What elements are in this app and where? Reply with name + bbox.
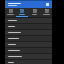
button[interactable]: Tab xyxy=(40,8,52,17)
button[interactable] xyxy=(5,18,52,23)
button[interactable] xyxy=(5,42,52,47)
button[interactable] xyxy=(5,36,52,41)
button[interactable] xyxy=(5,24,52,29)
button[interactable] xyxy=(5,60,52,64)
button[interactable]: More options xyxy=(45,2,50,7)
button[interactable]: Tab xyxy=(28,8,40,17)
button[interactable] xyxy=(5,30,52,35)
button[interactable]: Selected tab xyxy=(16,8,28,17)
button[interactable] xyxy=(5,54,52,59)
button[interactable]: Tab xyxy=(5,8,16,17)
button[interactable] xyxy=(5,48,52,53)
